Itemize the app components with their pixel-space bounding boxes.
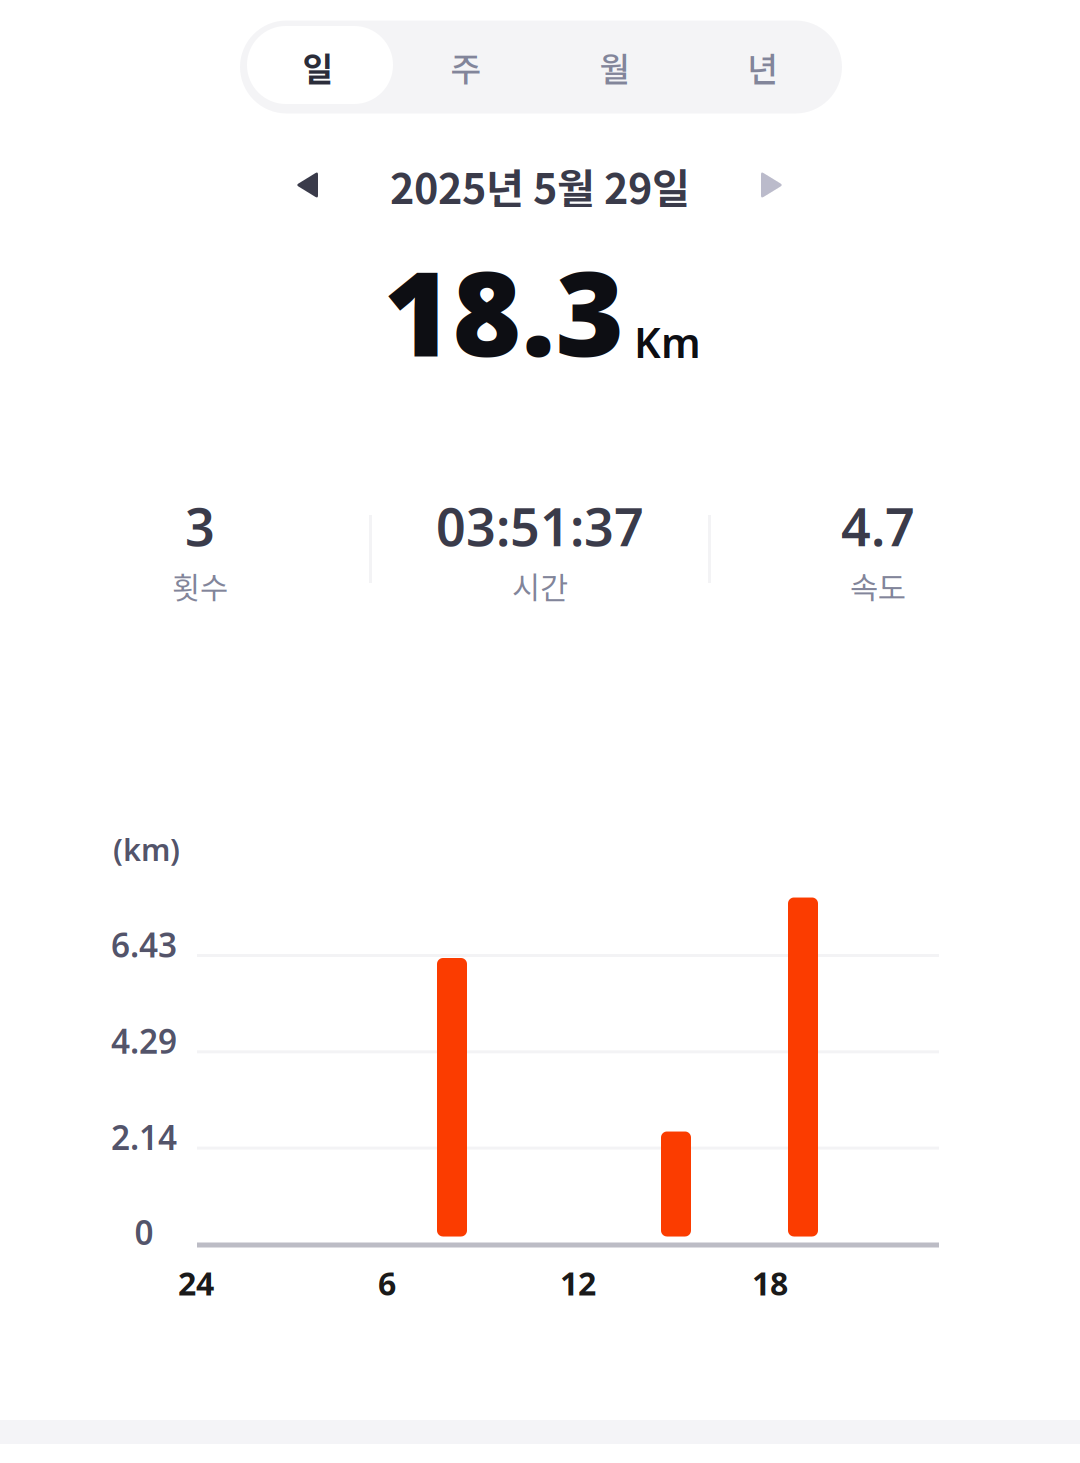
staticText: 03:51:37 [436, 491, 644, 561]
staticText: 4.7 [841, 491, 915, 561]
button[interactable]: 이전 날짜 [259, 148, 355, 222]
staticText: 6 [378, 1262, 396, 1304]
staticText: 0 [134, 1210, 153, 1254]
staticText: 3 [185, 491, 215, 561]
staticText: 6.43 [111, 922, 177, 967]
button[interactable]: 일 [243, 20, 393, 113]
button[interactable]: 년 [688, 20, 838, 113]
staticText: 12 [560, 1262, 596, 1304]
staticText: (km) [113, 829, 180, 869]
staticText: 년 [747, 43, 778, 91]
button[interactable]: 월 [540, 20, 690, 113]
staticText: 2.14 [111, 1115, 177, 1159]
staticText: Km [634, 315, 701, 369]
staticText: 속도 [850, 564, 906, 608]
staticText: 2025년 5월 29일 [390, 156, 690, 216]
staticText: 18.3 [383, 233, 624, 389]
staticText: 횟수 [172, 564, 228, 608]
button[interactable]: 주 [391, 20, 541, 113]
staticText: 일 [302, 43, 333, 91]
staticText: 24 [178, 1262, 214, 1304]
staticText: 월 [599, 43, 630, 91]
staticText: 4.29 [111, 1019, 177, 1063]
staticText: 시간 [512, 564, 568, 608]
staticText: 18 [752, 1262, 788, 1304]
staticText: 주 [450, 43, 481, 91]
button[interactable]: 다음 날짜 [724, 148, 820, 222]
